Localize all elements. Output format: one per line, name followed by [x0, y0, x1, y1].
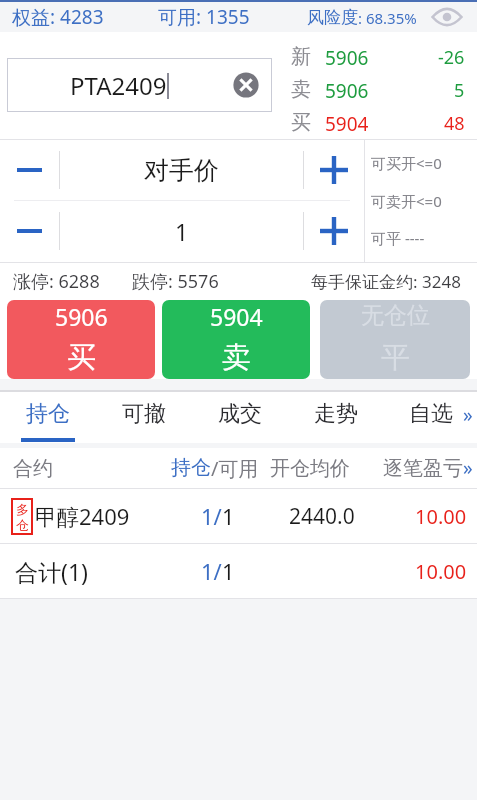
staticText: 甲醇2409	[35, 501, 130, 531]
staticText: 对手价	[144, 155, 219, 186]
staticText: 可卖开<=0	[371, 191, 442, 211]
staticText: : 68.35%	[358, 8, 417, 28]
button[interactable]: 走势	[288, 392, 384, 443]
staticText: 48	[444, 111, 465, 136]
staticText: /可用	[211, 455, 259, 482]
staticText: 买	[67, 339, 96, 376]
staticText: 走势	[314, 400, 358, 428]
staticText: 逐笔盈亏	[383, 456, 463, 481]
staticText: 持仓	[171, 455, 211, 480]
staticText: 可用: 1355	[158, 4, 250, 30]
button[interactable]: 自选	[384, 392, 477, 443]
staticText: 可平 ----	[371, 228, 425, 248]
button[interactable]: 1	[60, 201, 303, 261]
staticText: 5906	[325, 45, 369, 71]
staticText: 10.00	[415, 503, 467, 530]
staticText: 卖	[291, 77, 311, 102]
staticText: 跌停: 5576	[132, 269, 219, 294]
staticText: 1	[222, 556, 235, 586]
button[interactable]: More tabs	[463, 402, 473, 428]
staticText: 1/	[201, 556, 222, 586]
button[interactable]: 可撤	[96, 392, 192, 443]
staticText: 1/	[201, 501, 222, 531]
staticText: 可撤	[122, 400, 166, 428]
button[interactable]: Clear input	[224, 63, 268, 107]
button[interactable]: 对手价	[60, 140, 303, 200]
staticText: 持仓	[26, 400, 70, 428]
staticText: 5	[454, 78, 465, 103]
button[interactable]: 持仓	[0, 392, 96, 443]
staticText: 权益: 4283	[12, 4, 104, 30]
staticText: 无仓位	[361, 301, 430, 330]
button[interactable]: PTA2409	[7, 58, 272, 112]
staticText: 多	[16, 501, 29, 517]
staticText: 合计(1)	[15, 556, 88, 587]
staticText: 涨停: 6288	[13, 269, 100, 294]
staticText: 卖	[222, 339, 251, 376]
staticText: 1	[222, 501, 235, 531]
staticText: 风险度	[307, 7, 358, 28]
button[interactable]: More columns	[463, 455, 473, 481]
staticText: 1	[175, 216, 189, 247]
staticText: 平	[381, 339, 410, 376]
staticText: 成交	[218, 400, 262, 428]
button[interactable]: 成交	[192, 392, 288, 443]
staticText: PTA2409	[70, 69, 167, 102]
staticText: 新	[291, 44, 311, 69]
staticText: »	[463, 455, 473, 481]
staticText: 买	[291, 110, 311, 135]
button[interactable]: Increase	[304, 201, 364, 261]
staticText: »	[463, 402, 473, 428]
staticText: -26	[438, 45, 465, 70]
staticText: 10.00	[415, 558, 467, 585]
button[interactable]: 多	[0, 489, 477, 543]
staticText: 5906	[55, 301, 108, 332]
staticText: 2440.0	[289, 502, 355, 531]
staticText: 自选	[409, 400, 453, 428]
staticText: 开仓均价	[270, 456, 350, 481]
staticText: 5906	[325, 78, 369, 104]
button[interactable]: 无仓位	[320, 300, 470, 379]
staticText: 5904	[210, 301, 263, 332]
button[interactable]: Toggle balance visibility	[425, 2, 469, 32]
button[interactable]: 5904	[162, 300, 310, 379]
button[interactable]: Decrease	[0, 201, 59, 261]
staticText: 5904	[325, 111, 369, 137]
button[interactable]: Increase	[304, 140, 364, 200]
staticText: 仓	[16, 517, 29, 533]
button[interactable]: 5906	[7, 300, 155, 379]
staticText: 每手保证金约: 3248	[311, 270, 461, 293]
staticText: 合约	[13, 456, 53, 481]
button[interactable]: Decrease	[0, 140, 59, 200]
staticText: 可买开<=0	[371, 153, 442, 173]
